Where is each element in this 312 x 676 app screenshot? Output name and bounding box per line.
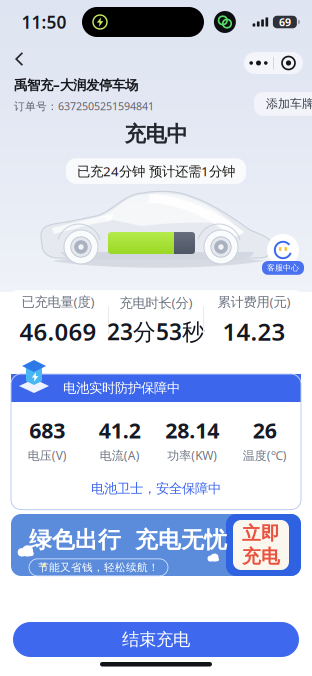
staticText: 41.2 xyxy=(99,416,141,444)
staticText: 电池卫士，安全保障中 xyxy=(91,480,221,497)
button[interactable]: Back xyxy=(4,46,35,72)
staticText: 电压(V) xyxy=(28,447,67,463)
staticText: 电流(A) xyxy=(100,447,140,463)
staticText: 绿色出行 充电无忧 xyxy=(29,526,227,554)
staticText: 客服中心 xyxy=(267,263,299,273)
staticText: 充电 xyxy=(242,545,280,568)
staticText: 23分53秒 xyxy=(107,316,205,346)
button[interactable]: 结束充电 xyxy=(13,622,299,657)
button[interactable]: Close mini program xyxy=(274,52,303,74)
staticText: 14.23 xyxy=(222,315,285,347)
staticText: 立即 xyxy=(242,522,280,545)
staticText: 26 xyxy=(253,416,277,444)
staticText: 充电中 xyxy=(124,121,187,147)
staticText: 电池实时防护保障中 xyxy=(63,380,180,396)
staticText: 46.069 xyxy=(19,315,96,347)
staticText: 已充电量(度) xyxy=(21,293,94,310)
staticText: 已充24分钟 预计还需1分钟 xyxy=(77,162,235,180)
staticText: 683 xyxy=(29,416,65,444)
staticText: 温度(℃) xyxy=(243,447,287,463)
staticText: 添加车牌 xyxy=(266,96,312,111)
staticText: 28.14 xyxy=(165,416,219,444)
staticText: 订单号：6372505251594841 xyxy=(14,99,154,113)
staticText: 功率(KW) xyxy=(167,447,217,463)
staticText: 11:50 xyxy=(21,10,66,33)
staticText: 累计费用(元) xyxy=(217,293,290,310)
staticText: 充电时长(分) xyxy=(119,294,192,311)
button[interactable]: 客服中心 xyxy=(262,234,304,275)
staticText: 69 xyxy=(279,15,291,29)
staticText: 禹智充–大润发停车场 xyxy=(14,76,138,94)
staticText: 结束充电 xyxy=(122,629,190,650)
button[interactable]: 添加车牌 xyxy=(254,92,312,116)
button[interactable]: More xyxy=(244,52,273,74)
button[interactable]: 绿色出行 充电无忧 xyxy=(11,514,301,576)
staticText: 节能又省钱，轻松续航！ xyxy=(38,561,159,574)
